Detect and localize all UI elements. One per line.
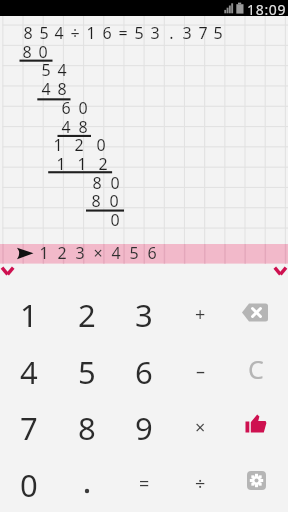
button[interactable]: 5 [58,343,116,400]
staticText: × [93,242,103,264]
staticText: 0 [110,209,120,231]
staticText: 8 [23,22,33,44]
staticText: 4 [20,351,38,393]
staticText: 6 [102,22,112,44]
button[interactable]: – [173,343,231,400]
staticText: 5 [41,59,51,81]
staticText: 2 [98,153,108,175]
staticText: 8 [92,172,102,194]
button[interactable]: 3 [115,286,173,343]
staticText: 4 [54,22,64,44]
staticText: 8 [78,407,96,449]
button[interactable] [230,456,288,512]
button[interactable] [270,263,288,280]
staticText: 4 [41,78,51,100]
staticText: 4 [57,59,67,81]
button[interactable] [230,399,288,456]
button[interactable] [58,456,116,512]
staticText: 3 [135,294,153,336]
staticText: 5 [129,242,139,264]
staticText: 1 [39,242,49,264]
staticText: 8 [91,190,101,212]
staticText: 5 [134,22,144,44]
staticText: 3 [182,22,192,44]
staticText: = [118,22,128,44]
staticText: 6 [147,242,157,264]
staticText: . [169,22,174,44]
button[interactable] [0,244,288,264]
button[interactable]: 4 [0,343,58,400]
staticText: 9 [135,407,153,449]
button[interactable]: + [173,286,231,343]
button[interactable]: 8 [58,399,116,456]
staticText: 1 [20,294,38,336]
button[interactable]: C [230,343,288,400]
staticText: 4 [111,242,121,264]
staticText: ÷ [70,22,80,44]
button[interactable]: 0 [0,456,58,512]
button[interactable]: = [115,456,173,512]
staticText: 18:09 [247,0,287,16]
staticText: = [139,471,150,496]
staticText: 6 [135,351,153,393]
staticText: 4 [61,116,71,138]
staticText: 2 [57,242,67,264]
staticText: 0 [110,172,120,194]
staticText: 3 [75,242,85,264]
staticText: 2 [78,294,96,336]
staticText: C [248,352,264,386]
button[interactable]: 1 [0,286,58,343]
staticText: 1 [77,153,87,175]
staticText: 5 [39,22,49,44]
staticText: 1 [86,22,96,44]
staticText: 0 [20,464,38,506]
staticText: 0 [38,41,48,63]
button[interactable]: 2 [58,286,116,343]
button[interactable]: × [173,399,231,456]
button[interactable] [230,286,288,343]
button[interactable]: 6 [115,343,173,400]
staticText: 0 [96,134,106,156]
staticText: – [196,359,205,384]
button[interactable]: 7 [0,399,58,456]
staticText: ÷ [195,471,206,496]
staticText: 8 [22,41,32,63]
staticText: 8 [78,116,88,138]
staticText: 8 [57,78,67,100]
staticText: 7 [198,22,208,44]
staticText: 7 [20,407,38,449]
staticText: 5 [213,22,223,44]
staticText: 5 [78,351,96,393]
staticText: 0 [78,97,88,119]
button[interactable] [0,263,18,280]
staticText: 0 [109,190,119,212]
button[interactable]: ÷ [173,456,231,512]
staticText: 2 [74,134,84,156]
staticText: + [195,302,206,327]
staticText: 1 [56,153,66,175]
button[interactable]: 9 [115,399,173,456]
staticText: × [195,415,206,440]
staticText: 6 [61,97,71,119]
staticText: 1 [53,134,63,156]
staticText: 3 [150,22,160,44]
